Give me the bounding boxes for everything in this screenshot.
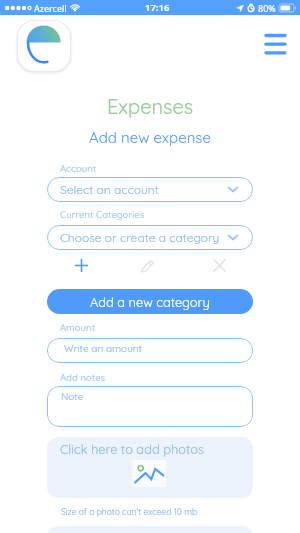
staticText: Choose or create a category: [60, 230, 220, 245]
button[interactable]: Add category: [69, 253, 93, 277]
staticText: Account: [60, 162, 97, 174]
button[interactable]: Edit category: [136, 253, 160, 277]
staticText: Size of a photo can't exceed 10 mb: [61, 506, 198, 517]
button[interactable]: Delete category: [207, 253, 231, 277]
staticText: Write an amount: [64, 342, 142, 355]
staticText: Current Categories: [60, 208, 145, 220]
staticText: Amount: [60, 321, 96, 333]
staticText: Note: [61, 390, 84, 403]
staticText: Click here to add photos: [60, 441, 204, 457]
staticText: Add notes: [60, 371, 106, 383]
staticText: Add new expense: [89, 128, 211, 147]
button[interactable]: App logo: [14, 17, 74, 75]
staticText: Expenses: [107, 94, 194, 119]
button[interactable]: Add a new category: [47, 289, 253, 314]
staticText: 17:16: [145, 1, 170, 14]
button[interactable]: Choose or create a category: [47, 225, 253, 250]
button[interactable]: Select an account: [47, 177, 253, 202]
button[interactable]: Click here to add photos: [47, 437, 253, 498]
button[interactable]: Note: [47, 386, 253, 427]
button[interactable]: Menu: [257, 28, 293, 60]
button[interactable]: Write an amount: [47, 338, 253, 363]
staticText: Azercell: [34, 2, 67, 14]
staticText: Select an account: [60, 182, 159, 197]
staticText: Add a new category: [90, 294, 210, 310]
staticText: 80%: [258, 2, 276, 14]
